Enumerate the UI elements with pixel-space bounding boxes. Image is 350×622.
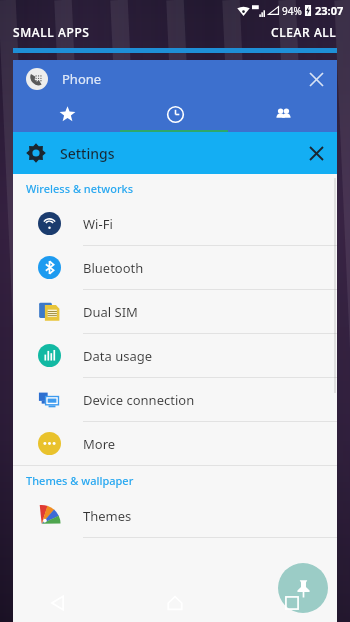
button[interactable]: Close Phone [299, 62, 333, 96]
staticText: CLEAR ALL [271, 24, 337, 40]
button[interactable]: Bluetooth [13, 246, 337, 290]
button[interactable]: Themes [13, 494, 337, 538]
button[interactable]: Device connection [13, 378, 337, 422]
staticText: Wi-Fi [83, 215, 113, 233]
staticText: Bluetooth [83, 259, 144, 277]
staticText: 94% [282, 4, 302, 18]
button[interactable]: Close Settings [298, 135, 334, 171]
button[interactable]: Phone [13, 60, 337, 98]
button[interactable]: Wi-Fi [13, 202, 337, 246]
staticText: Themes & wallpaper [26, 473, 134, 488]
staticText: Wireless & networks [26, 181, 134, 196]
staticText: More [83, 435, 116, 453]
staticText: SMALL APPS [13, 24, 90, 40]
button[interactable]: More [13, 422, 337, 465]
staticText: Themes [83, 507, 132, 525]
staticText: 23:07 [315, 3, 344, 18]
button[interactable]: Contacts [229, 98, 337, 130]
button[interactable]: Dual SIM [13, 290, 337, 334]
button[interactable]: Recents [121, 98, 229, 130]
button[interactable]: Data usage [13, 334, 337, 378]
button[interactable]: Favourites [13, 98, 121, 130]
button[interactable]: Recents [233, 584, 350, 622]
staticText: Data usage [83, 347, 153, 365]
button[interactable]: Back [0, 584, 116, 622]
button[interactable]: SMALL APPS [13, 24, 90, 40]
button[interactable]: Pin [278, 563, 328, 613]
button[interactable]: CLEAR ALL [271, 24, 337, 40]
staticText: Device connection [83, 391, 195, 409]
button[interactable]: Settings [13, 132, 337, 174]
staticText: Dual SIM [83, 303, 138, 321]
staticText: Phone [62, 70, 102, 88]
staticText: Settings [60, 144, 115, 163]
